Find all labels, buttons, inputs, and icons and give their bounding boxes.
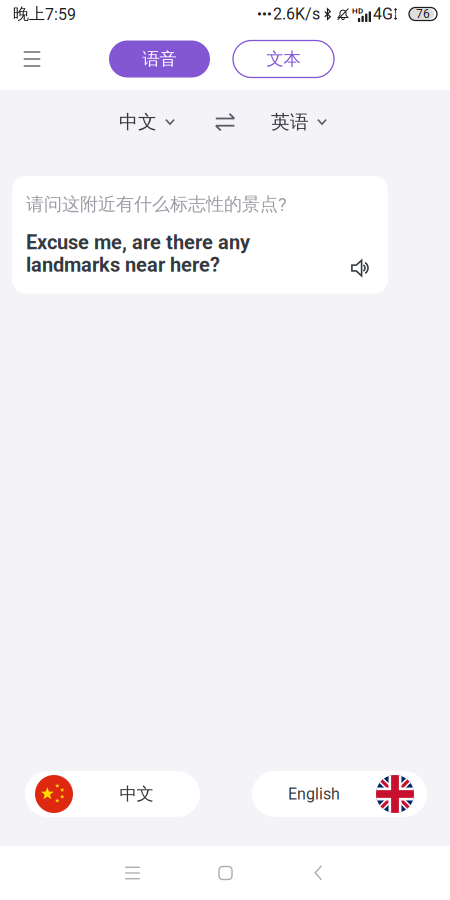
button[interactable]: 文本 xyxy=(233,40,334,77)
button[interactable]: English xyxy=(252,771,427,817)
staticText: 英语 xyxy=(271,110,309,134)
button[interactable]: Back xyxy=(272,853,365,893)
staticText: 中文 xyxy=(119,783,153,805)
staticText: 4G xyxy=(373,5,393,23)
button[interactable]: Swap languages xyxy=(205,102,245,142)
staticText: 2.6K/s xyxy=(273,5,320,23)
staticText: Excuse me, are there any xyxy=(26,231,250,254)
button[interactable]: 中文 xyxy=(114,100,180,144)
staticText: 晚上7:59 xyxy=(13,4,76,24)
staticText: 文本 xyxy=(266,48,300,70)
button[interactable]: 英语 xyxy=(266,100,332,144)
staticText: HD xyxy=(352,6,363,15)
staticText: English xyxy=(288,785,340,803)
button[interactable]: Home xyxy=(179,853,272,893)
button[interactable]: 中文 xyxy=(25,771,200,817)
staticText: 请问这附近有什么标志性的景点? xyxy=(26,193,287,216)
button[interactable]: 语音 xyxy=(109,40,210,77)
staticText: ••• xyxy=(257,6,272,22)
staticText: 76 xyxy=(416,7,430,21)
button[interactable]: Recents xyxy=(86,853,179,893)
button[interactable]: Menu xyxy=(9,37,55,81)
staticText: landmarks near here? xyxy=(26,253,220,276)
staticText: 中文 xyxy=(119,110,157,134)
staticText: 语音 xyxy=(142,48,176,70)
